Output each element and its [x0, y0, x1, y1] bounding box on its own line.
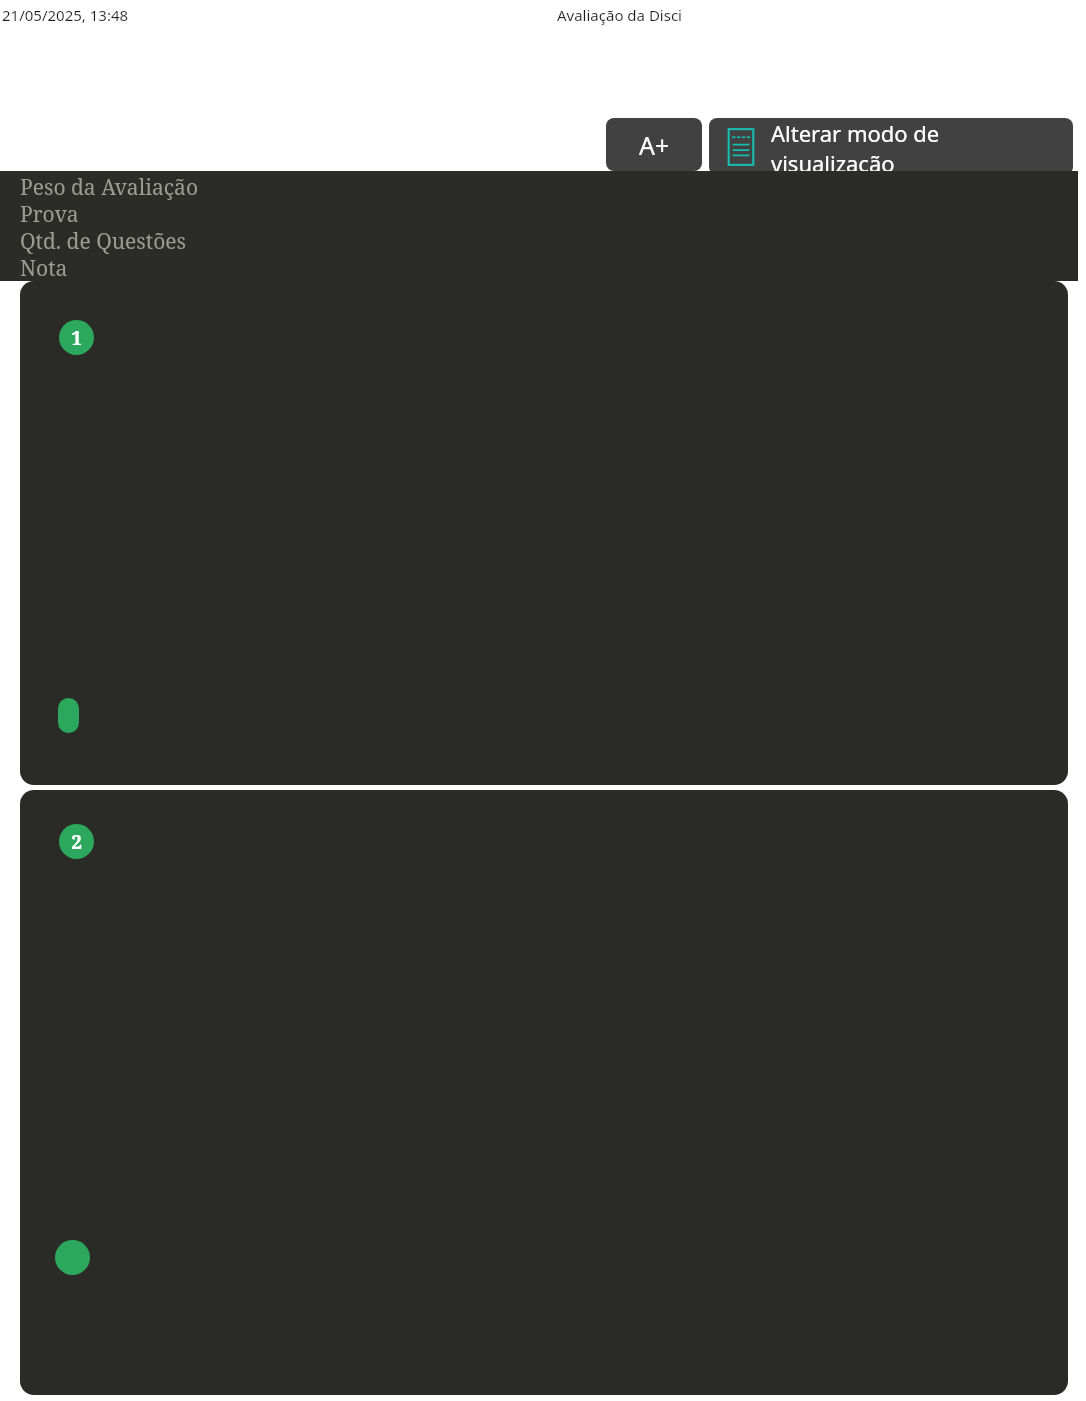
- button[interactable]: Alterar modo de visualização: [709, 118, 1073, 175]
- other: Alterar modo de visualização: [727, 128, 755, 166]
- staticText: Avaliação da Disci: [557, 5, 682, 25]
- button[interactable]: 1: [20, 281, 1068, 785]
- staticText: 1: [71, 325, 82, 351]
- staticText: Peso da Avaliação: [20, 173, 198, 200]
- button[interactable]: A+: [606, 118, 702, 171]
- staticText: Prova: [20, 200, 79, 227]
- staticText: 2: [71, 829, 82, 855]
- staticText: Alterar modo de visualização: [771, 118, 1059, 175]
- button[interactable]: 2: [20, 790, 1068, 1395]
- staticText: Nota: [20, 254, 68, 281]
- staticText: 21/05/2025, 13:48: [2, 5, 129, 25]
- staticText: Qtd. de Questões: [20, 227, 187, 254]
- staticText: A+: [639, 128, 670, 162]
